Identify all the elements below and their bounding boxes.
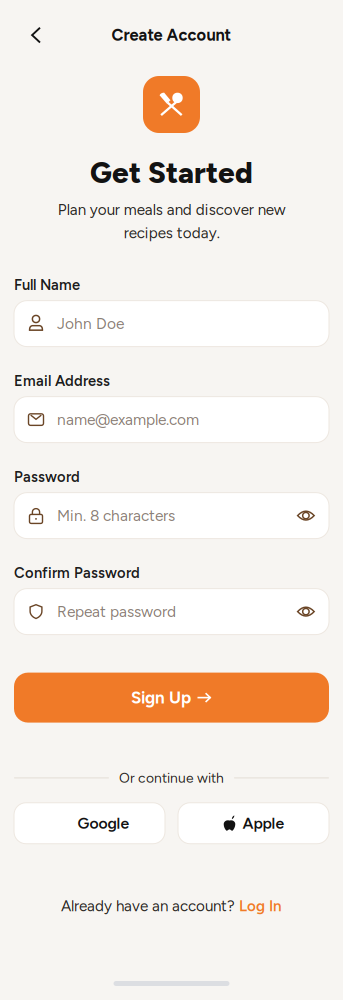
button[interactable]: Repeat password — [14, 589, 329, 635]
button[interactable]: Apple — [178, 803, 329, 844]
button[interactable]: Sign Up — [14, 673, 329, 723]
button[interactable]: John Doe — [14, 301, 329, 347]
staticText: Password — [14, 468, 80, 486]
staticText: Get Started — [90, 155, 253, 190]
staticText: John Doe — [57, 314, 124, 333]
staticText: Google — [77, 814, 129, 833]
staticText: Plan your meals and discover new recipes… — [57, 200, 285, 242]
button[interactable]: Min. 8 characters — [14, 493, 329, 539]
staticText: Repeat password — [57, 602, 176, 621]
staticText: Confirm Password — [14, 564, 140, 582]
staticText: Full Name — [14, 276, 80, 294]
staticText: name@example.com — [57, 410, 199, 429]
staticText: Min. 8 characters — [57, 506, 175, 525]
staticText: Log In — [239, 897, 282, 915]
staticText: Apple — [242, 814, 284, 833]
staticText: Or continue with — [119, 770, 224, 786]
button[interactable]: Already have an account? — [61, 897, 282, 915]
staticText: Sign Up — [131, 687, 191, 708]
button[interactable]: Google — [14, 803, 165, 844]
staticText: Create Account — [111, 25, 231, 45]
staticText: Already have an account? — [61, 897, 235, 915]
button[interactable]: name@example.com — [14, 397, 329, 443]
button[interactable]: Back — [19, 18, 53, 52]
staticText: Email Address — [14, 372, 110, 390]
